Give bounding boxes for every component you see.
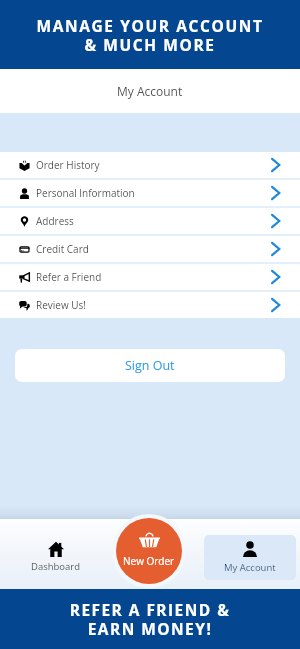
- button[interactable]: My Account: [204, 535, 296, 580]
- button[interactable]: Review Us!: [0, 292, 300, 318]
- staticText: Review Us!: [36, 298, 86, 312]
- button[interactable]: Refer a Friend: [0, 264, 300, 290]
- staticText: REFER A FRIEND & EARN MONEY!: [0, 599, 300, 639]
- staticText: Personal Information: [36, 186, 135, 200]
- staticText: Sign Out: [125, 357, 175, 374]
- button[interactable]: New Order: [116, 518, 182, 584]
- button[interactable]: Dashboard: [10, 519, 101, 589]
- staticText: Address: [36, 214, 74, 228]
- button[interactable]: Personal Information: [0, 180, 300, 206]
- staticText: My Account: [224, 561, 276, 574]
- staticText: Dashboard: [31, 560, 81, 573]
- staticText: Credit Card: [36, 242, 89, 256]
- staticText: MANAGE YOUR ACCOUNT & MUCH MORE: [0, 15, 300, 55]
- staticText: New Order: [123, 554, 175, 568]
- staticText: My Account: [117, 83, 183, 99]
- button[interactable]: Sign Out: [15, 349, 285, 382]
- button[interactable]: Address: [0, 208, 300, 234]
- button[interactable]: Order History: [0, 152, 300, 178]
- staticText: Order History: [36, 158, 100, 172]
- staticText: Refer a Friend: [36, 270, 102, 284]
- button[interactable]: Credit Card: [0, 236, 300, 262]
